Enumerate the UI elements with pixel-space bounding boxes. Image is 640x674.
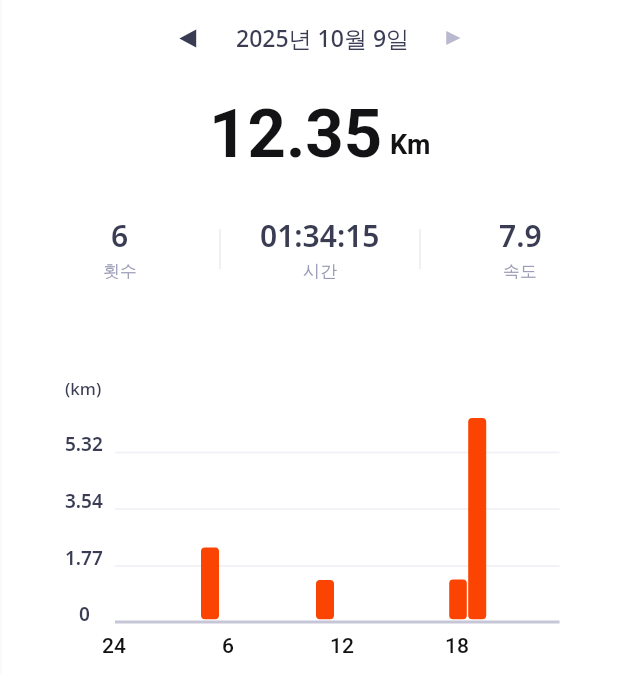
staticText: 1.77 xyxy=(65,545,103,571)
staticText: 횟수 xyxy=(103,261,137,282)
button[interactable]: Next day xyxy=(431,15,475,59)
staticText: 24 xyxy=(102,634,126,659)
staticText: 0 xyxy=(79,601,90,627)
staticText: 18 xyxy=(445,634,469,659)
button[interactable]: Previous day xyxy=(165,15,209,59)
staticText: 속도 xyxy=(503,261,537,282)
staticText: (km) xyxy=(65,377,102,400)
staticText: 12.35 xyxy=(209,95,383,174)
button[interactable]: 2025년 10월 9일 xyxy=(236,22,410,53)
staticText: 시간 xyxy=(303,261,337,282)
button[interactable]: 6 xyxy=(20,215,220,282)
staticText: Km xyxy=(390,129,431,161)
button[interactable]: 01:34:15 xyxy=(220,215,420,282)
button[interactable]: 7.9 xyxy=(420,215,620,282)
button[interactable]: Hourly distance chart xyxy=(0,370,640,674)
staticText: 3.54 xyxy=(65,488,103,514)
staticText: 6 xyxy=(111,215,129,256)
staticText: 01:34:15 xyxy=(260,215,380,256)
staticText: 7.9 xyxy=(499,215,542,256)
staticText: 12 xyxy=(330,634,354,659)
staticText: 6 xyxy=(222,634,234,659)
staticText: 2025년 10월 9일 xyxy=(236,22,410,53)
staticText: 5.32 xyxy=(65,431,103,457)
